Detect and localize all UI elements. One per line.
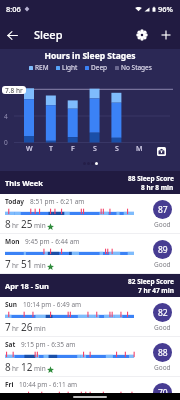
button[interactable]: Back <box>0 23 24 47</box>
staticText: min <box>34 261 46 270</box>
staticText: 70 <box>158 387 168 399</box>
staticText: Sleep <box>34 27 63 42</box>
staticText: hr <box>12 261 19 270</box>
button[interactable]: Add <box>154 23 178 47</box>
staticText: 7 <box>5 257 11 271</box>
button[interactable]: Today <box>0 194 180 234</box>
button[interactable]: Mon <box>0 234 180 274</box>
staticText: F <box>71 144 75 154</box>
staticText: T <box>49 144 53 154</box>
button[interactable]: This Week <box>0 171 180 194</box>
staticText: This Week <box>5 178 43 188</box>
staticText: hr <box>12 364 19 373</box>
staticText: 9:15 pm - 6:35 am <box>21 340 76 349</box>
button[interactable]: Sleep score info <box>157 147 166 156</box>
staticText: S <box>115 144 119 154</box>
staticText: M <box>136 144 143 154</box>
staticText: 10:44 pm - 6:11 am <box>19 380 78 389</box>
staticText: S <box>93 144 97 154</box>
button[interactable]: Sun <box>0 297 180 337</box>
staticText: 10:14 pm - 6:49 am <box>23 300 82 309</box>
staticText: No Stages <box>121 63 152 72</box>
staticText: Mon <box>5 237 20 246</box>
staticText: 12 <box>21 360 33 374</box>
staticText: Sun <box>5 300 18 309</box>
staticText: 8:06 <box>6 4 21 14</box>
staticText: 89 <box>158 244 168 256</box>
staticText: 8 hr 8 min <box>141 183 174 192</box>
staticText: 25 <box>21 217 33 231</box>
staticText: 51 <box>21 257 33 271</box>
staticText: Fri <box>5 380 14 389</box>
staticText: 7 hr 47 min <box>138 286 174 295</box>
staticText: 82 Sleep Score <box>128 277 174 286</box>
staticText: 4 <box>4 112 8 121</box>
button[interactable]: Settings <box>130 23 154 47</box>
staticText: min <box>34 364 46 373</box>
staticText: 0 <box>4 138 8 147</box>
staticText: hr <box>12 324 19 333</box>
staticText: REM <box>35 63 49 72</box>
staticText: 26 <box>21 320 33 334</box>
button[interactable]: Apr 18 - Sun <box>0 274 180 297</box>
staticText: Deep <box>91 63 108 72</box>
staticText: Today <box>5 197 25 206</box>
staticText: Good <box>154 260 171 269</box>
staticText: Sat <box>5 340 16 349</box>
staticText: 8:51 pm - 6:21 am <box>30 197 85 206</box>
staticText: 7.8 hr <box>5 86 23 94</box>
staticText: min <box>34 221 46 230</box>
staticText: Good <box>154 363 171 372</box>
staticText: hr <box>12 221 19 230</box>
staticText: min <box>34 324 46 333</box>
staticText: Hours in Sleep Stages <box>0 50 180 62</box>
staticText: 9:45 pm - 6:44 am <box>25 237 80 246</box>
staticText: 8 <box>5 360 11 374</box>
staticText: Good <box>154 220 171 229</box>
staticText: 88 Sleep Score <box>128 174 174 183</box>
staticText: 88 <box>158 347 168 359</box>
staticText: Good <box>154 323 171 332</box>
staticText: 82 <box>158 307 168 319</box>
staticText: 96% <box>158 4 173 14</box>
staticText: Light <box>62 63 78 72</box>
button[interactable]: Sat <box>0 337 180 377</box>
staticText: Apr 18 - Sun <box>5 281 49 291</box>
staticText: 7 <box>5 320 11 334</box>
staticText: W <box>26 144 33 154</box>
button[interactable]: Fri <box>0 377 180 400</box>
staticText: 87 <box>158 204 168 216</box>
staticText: 8 <box>5 217 11 231</box>
